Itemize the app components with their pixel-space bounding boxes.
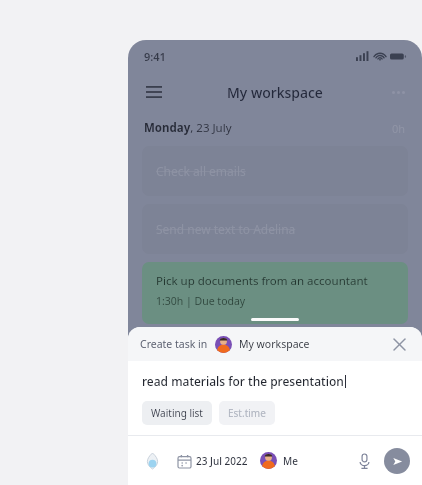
staticText: My workspace [227, 83, 323, 102]
staticText: Send new text to Adelina [156, 221, 296, 237]
button[interactable]: Priority [140, 449, 164, 473]
staticText: Create task in [140, 337, 208, 351]
button[interactable]: Close [388, 333, 410, 355]
staticText: Pick up documents from an accountant [156, 273, 368, 289]
staticText: 23 Jul 2022 [196, 454, 248, 468]
button[interactable]: read materials for the presentation [128, 361, 422, 401]
staticText: 0h [392, 121, 406, 136]
button[interactable]: 23 Jul 2022 [178, 454, 248, 468]
staticText: My workspace [239, 337, 310, 351]
staticText: Est.time [228, 406, 266, 420]
staticText: 9:41 [144, 49, 166, 64]
button[interactable]: Me [260, 452, 298, 469]
button[interactable]: Pick up documents from an accountant [142, 262, 408, 324]
staticText: Check all emails [156, 163, 246, 179]
staticText: 1:30h | Due today [156, 294, 246, 308]
button[interactable]: Est.time [219, 401, 275, 425]
staticText: Waiting list [151, 406, 203, 420]
staticText: Me [283, 454, 298, 468]
button[interactable]: Waiting list [142, 401, 212, 425]
button[interactable]: Menu [140, 78, 168, 106]
staticText: Monday, 23 July [144, 120, 232, 136]
staticText: read materials for the presentation [142, 373, 344, 389]
button[interactable]: Send [384, 448, 410, 474]
button[interactable]: Voice input [352, 449, 376, 473]
